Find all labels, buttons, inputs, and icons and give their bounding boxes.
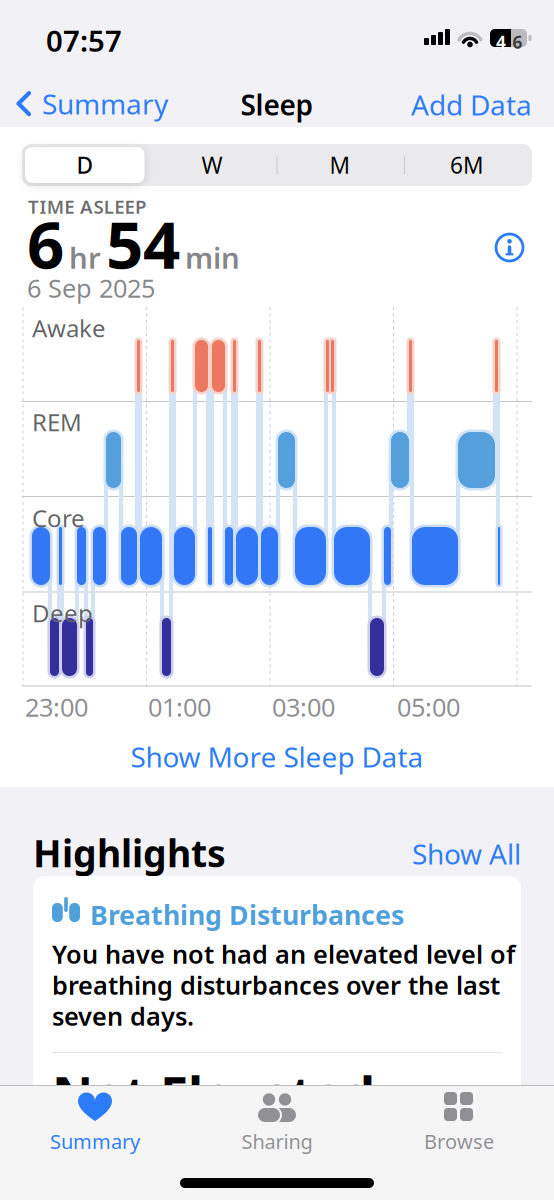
- button[interactable]: About Time Asleep: [496, 234, 523, 261]
- button[interactable]: D: [25, 145, 145, 185]
- button[interactable]: Browse: [384, 1092, 534, 1155]
- staticText: Browse: [424, 1128, 494, 1155]
- staticText: Highlights: [33, 828, 226, 878]
- staticText: Awake: [32, 312, 106, 344]
- staticText: breathing disturbances over the last: [52, 968, 500, 1002]
- staticText: You have not had an elevated level of: [52, 937, 515, 971]
- button[interactable]: Show All: [412, 835, 521, 872]
- button[interactable]: 6M: [407, 145, 527, 185]
- staticText: 07:57: [46, 21, 122, 60]
- staticText: M: [329, 150, 350, 180]
- staticText: Show All: [412, 835, 521, 872]
- staticText: Core: [32, 502, 85, 534]
- button[interactable]: Add Data: [411, 86, 532, 123]
- staticText: 03:00: [272, 690, 335, 724]
- staticText: Breathing Disturbances: [90, 897, 404, 932]
- staticText: 05:00: [397, 690, 460, 724]
- button[interactable]: W: [152, 145, 272, 185]
- staticText: REM: [32, 406, 82, 438]
- staticText: Show More Sleep Data: [130, 738, 423, 775]
- staticText: seven days.: [52, 999, 194, 1033]
- button[interactable]: M: [280, 145, 400, 185]
- staticText: D: [76, 150, 93, 180]
- staticText: 6: [512, 30, 522, 53]
- button[interactable]: Sharing: [202, 1092, 352, 1155]
- staticText: min: [185, 238, 240, 277]
- staticText: 4: [496, 30, 506, 53]
- staticText: 01:00: [148, 690, 211, 724]
- button[interactable]: Breathing Disturbances: [33, 876, 521, 1200]
- staticText: 6: [27, 200, 64, 287]
- staticText: Sleep: [240, 86, 313, 123]
- staticText: W: [201, 150, 222, 180]
- button[interactable]: Summary: [16, 85, 168, 122]
- staticText: 6M: [450, 150, 484, 180]
- staticText: Not Elevated: [52, 1060, 375, 1127]
- staticText: Add Data: [411, 86, 532, 123]
- staticText: Summary: [42, 85, 168, 122]
- button[interactable]: Summary: [20, 1092, 170, 1155]
- staticText: hr: [69, 238, 101, 277]
- staticText: Summary: [50, 1128, 140, 1155]
- staticText: TIME ASLEEP: [28, 194, 146, 219]
- button[interactable]: Show More Sleep Data: [0, 738, 554, 775]
- staticText: 6 Sep 2025: [27, 271, 155, 305]
- staticText: 23:00: [25, 690, 88, 724]
- staticText: Deep: [32, 597, 93, 629]
- staticText: Sharing: [241, 1128, 312, 1155]
- staticText: 54: [106, 200, 180, 287]
